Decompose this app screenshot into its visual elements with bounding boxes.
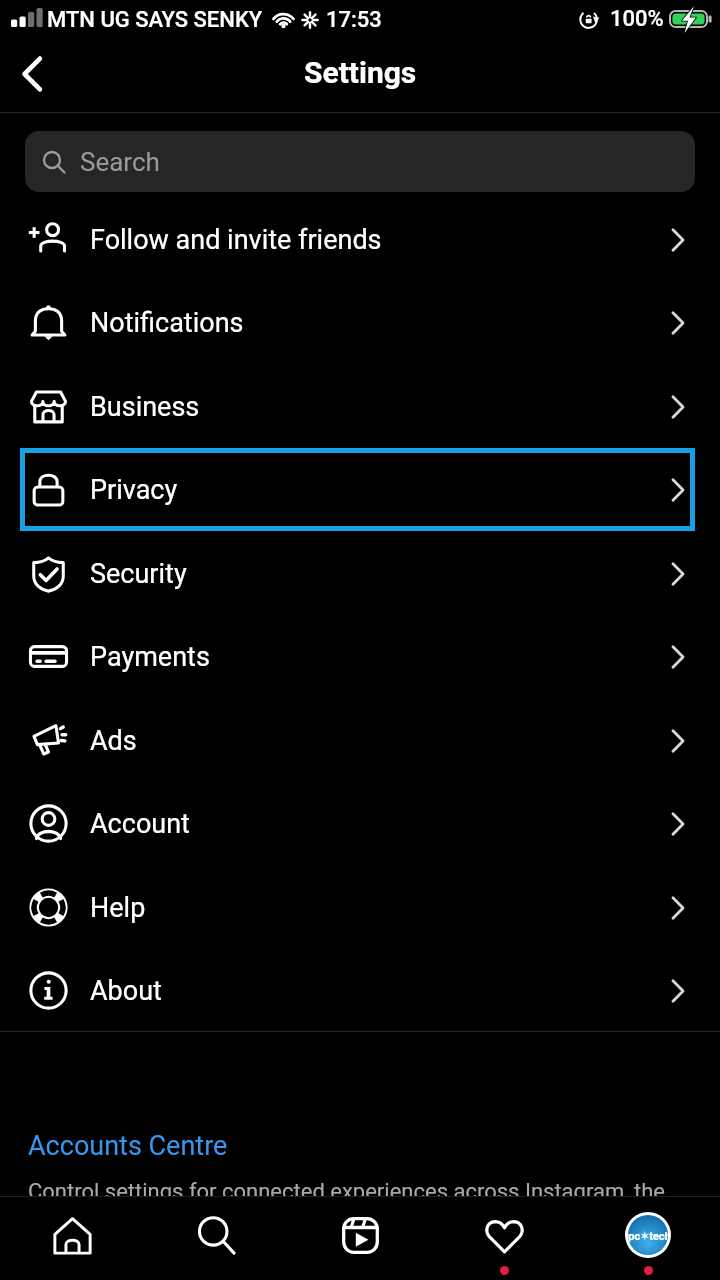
button[interactable]: Follow and invite friends [0,198,720,281]
button[interactable]: Privacy [0,448,720,531]
button[interactable]: Security [0,532,720,615]
button[interactable]: Home [0,1196,144,1280]
button[interactable]: Search [25,131,695,192]
staticText: Account [90,808,190,840]
button[interactable]: Business [0,365,720,448]
staticText: 100% [610,6,664,32]
button[interactable]: Accounts Centre [0,1119,720,1205]
staticText: Payments [90,641,210,673]
staticText: MTN UG SAYS SENKY [47,7,263,33]
staticText: pc✶tech [628,1229,668,1242]
button[interactable]: Help [0,866,720,949]
button[interactable]: About [0,949,720,1032]
button[interactable]: Payments [0,615,720,698]
staticText: Help [90,892,146,924]
button[interactable]: Activity [432,1196,576,1280]
staticText: Privacy [90,474,178,506]
staticText: Ads [90,725,137,757]
button[interactable]: Reels [288,1196,432,1280]
staticText: About [90,975,162,1007]
button[interactable]: Profile [576,1196,720,1280]
button[interactable]: Notifications [0,281,720,364]
staticText: Accounts Centre [28,1130,228,1162]
staticText: Notifications [90,307,244,339]
staticText: Settings [304,55,417,90]
button[interactable]: Search [144,1196,288,1280]
staticText: Business [90,391,200,423]
staticText: Control settings for connected experienc… [28,1179,665,1205]
staticText: Search [80,147,160,177]
staticText: 17:53 [326,7,382,33]
staticText: Follow and invite friends [90,224,382,256]
staticText: Security [90,558,187,590]
button[interactable]: Back [0,47,64,111]
button[interactable]: Ads [0,699,720,782]
button[interactable]: Account [0,782,720,865]
